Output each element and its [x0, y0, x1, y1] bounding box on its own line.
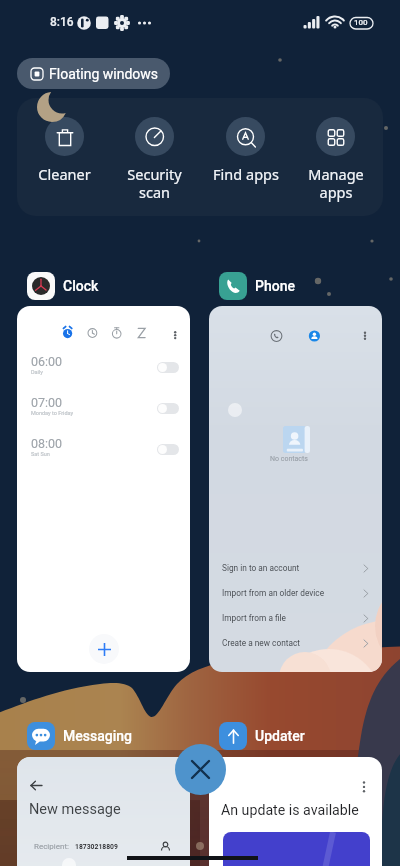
staticText: Sign in to an account: [222, 563, 300, 573]
staticText: Sat Sun: [31, 451, 50, 457]
button[interactable]: Security scan: [111, 98, 198, 202]
button[interactable]: Cleaner: [21, 98, 108, 184]
staticText: Messaging: [63, 728, 133, 744]
button[interactable]: 07:00: [17, 395, 190, 429]
staticText: 8:16: [50, 15, 74, 29]
staticText: 07:00: [31, 395, 63, 410]
staticText: 08:00: [31, 436, 63, 451]
staticText: New message: [29, 801, 121, 818]
staticText: Manage apps: [308, 164, 364, 202]
button[interactable]: Sign in to an account: [209, 556, 382, 581]
staticText: 06:00: [31, 354, 63, 369]
staticText: Create a new contact: [222, 638, 301, 648]
button[interactable]: Import from a file: [209, 606, 382, 631]
button[interactable]: Close all apps: [175, 744, 226, 795]
button[interactable]: Floating windows: [17, 58, 170, 89]
staticText: Phone: [255, 278, 295, 294]
staticText: No contacts: [270, 455, 308, 463]
button[interactable]: An update is available: [209, 757, 382, 866]
staticText: Recipient:: [34, 842, 69, 851]
button[interactable]: Find apps: [202, 98, 289, 184]
staticText: 100: [354, 18, 368, 27]
button[interactable]: 06:00: [17, 354, 190, 388]
staticText: Import from an older device: [222, 588, 325, 598]
button[interactable]: New message: [17, 757, 190, 866]
button[interactable]: Messaging: [27, 722, 133, 750]
button[interactable]: Manage apps: [292, 98, 379, 202]
button[interactable]: Create a new contact: [209, 631, 382, 656]
button[interactable]: No contacts: [209, 306, 382, 672]
staticText: Floating windows: [49, 66, 159, 82]
staticText: Monday to Friday: [31, 410, 74, 416]
button[interactable]: Updater: [219, 722, 305, 750]
staticText: Find apps: [213, 164, 279, 184]
staticText: Cleaner: [38, 164, 91, 184]
button[interactable]: 08:00: [17, 436, 190, 470]
button[interactable]: 06:00: [17, 306, 190, 672]
staticText: An update is available: [221, 802, 359, 819]
button[interactable]: Phone: [219, 272, 295, 300]
staticText: Security scan: [127, 164, 182, 202]
staticText: Updater: [255, 728, 305, 744]
staticText: 18730218809: [75, 843, 118, 851]
staticText: Clock: [63, 278, 99, 294]
staticText: Import from a file: [222, 613, 286, 623]
button[interactable]: Clock: [27, 272, 99, 300]
button[interactable]: Import from an older device: [209, 581, 382, 606]
staticText: Daily: [31, 369, 43, 375]
button[interactable]: Add alarm: [89, 634, 119, 664]
